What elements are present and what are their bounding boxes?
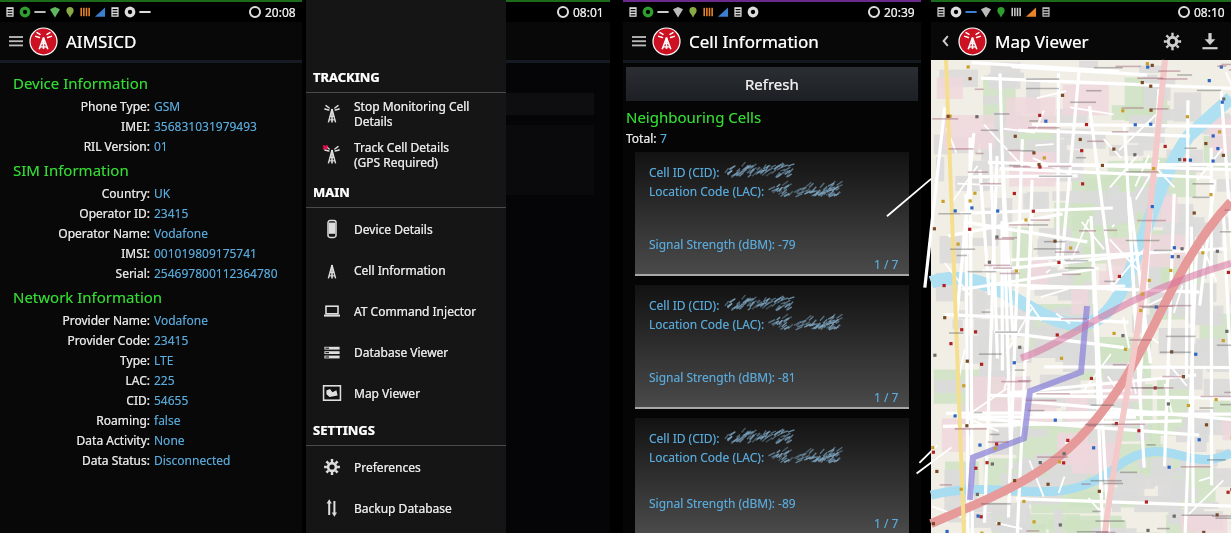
staticText: CID: <box>126 392 150 408</box>
button[interactable]: Cell ID (CID): <box>635 152 909 274</box>
staticText: Signal Strength (dBM): -79 <box>649 236 796 252</box>
button[interactable]: Settings <box>1159 28 1185 54</box>
button[interactable] <box>931 60 1231 533</box>
staticText: Track Cell Details (GPS Required) <box>354 139 450 170</box>
staticText: Vodafone <box>154 225 208 241</box>
staticText: None <box>154 432 185 448</box>
button[interactable]: Track Cell Details (GPS Required) <box>306 134 506 175</box>
staticText: Location Code (LAC): <box>649 316 768 332</box>
staticText: false <box>154 412 181 428</box>
staticText: Country: <box>101 185 150 201</box>
staticText: Preferences <box>354 459 421 475</box>
staticText: Location Code (LAC): <box>649 449 768 465</box>
button[interactable]: Database Viewer <box>306 331 506 372</box>
button[interactable]: Open navigation drawer <box>631 33 647 49</box>
staticText: AT Command Injector <box>354 303 477 319</box>
staticText: Operator Name: <box>58 225 150 241</box>
staticText: 08:01 <box>573 4 604 20</box>
button[interactable]: AT Command Injector <box>306 290 506 331</box>
staticText: 1 / 7 <box>874 515 899 531</box>
button[interactable]: Cell Information <box>306 249 506 290</box>
staticText: TRACKING <box>313 68 380 86</box>
staticText: Location Code (LAC): <box>649 183 768 199</box>
button[interactable]: Cell ID (CID): <box>635 418 909 533</box>
staticText: Device Information <box>13 73 149 93</box>
staticText: SIM Information <box>13 160 129 180</box>
staticText: Type: <box>120 352 150 368</box>
staticText: Phone Type: <box>80 98 150 114</box>
staticText: Cell Information <box>689 30 819 53</box>
staticText: Vodafone <box>154 312 208 328</box>
staticText: Total: <box>626 130 660 146</box>
staticText: LTE <box>154 352 174 368</box>
staticText: MAIN <box>313 183 350 201</box>
staticText: IMEI: <box>121 118 150 134</box>
staticText: Cell ID (CID): <box>649 297 723 313</box>
button[interactable]: Device Details <box>306 208 506 249</box>
staticText: SETTINGS <box>313 421 375 439</box>
staticText: Neighbouring Cells <box>626 107 762 127</box>
button[interactable]: Stop Monitoring Cell Details <box>306 93 506 134</box>
button[interactable]: Download map <box>1197 28 1223 54</box>
staticText: Roaming: <box>96 412 150 428</box>
staticText: Provider Name: <box>62 312 150 328</box>
staticText: Stop Monitoring Cell Details <box>354 98 470 129</box>
staticText: Map Viewer <box>354 385 421 401</box>
staticText: UK <box>154 185 171 201</box>
staticText: 225 <box>154 372 175 388</box>
staticText: Network Information <box>13 287 163 307</box>
staticText: LAC: <box>125 372 150 388</box>
staticText: 20:08 <box>265 4 296 20</box>
button[interactable]: Map Viewer <box>306 372 506 413</box>
button[interactable]: Preferences <box>306 446 506 487</box>
staticText: Serial: <box>115 265 150 281</box>
staticText: 7 <box>660 130 667 146</box>
staticText: Cell ID (CID): <box>649 430 723 446</box>
staticText: 254697800112364780 <box>154 265 278 281</box>
staticText: 23415 <box>154 332 189 348</box>
staticText: 20:39 <box>884 4 915 20</box>
staticText: 1 / 7 <box>874 389 899 405</box>
staticText: Backup Database <box>354 500 452 516</box>
button[interactable]: Backup Database <box>306 487 506 528</box>
staticText: Refresh <box>745 74 799 94</box>
staticText: 54655 <box>154 392 189 408</box>
button[interactable]: Open navigation drawer <box>8 33 24 49</box>
staticText: Data Activity: <box>76 432 150 448</box>
staticText: Data Status: <box>81 452 150 468</box>
staticText: AIMSICD <box>66 30 137 53</box>
button[interactable]: Back <box>939 34 953 48</box>
staticText: 01 <box>154 138 168 154</box>
staticText: RIL Version: <box>83 138 150 154</box>
staticText: GSM <box>154 98 181 114</box>
staticText: 1 / 7 <box>874 256 899 272</box>
staticText: IMSI: <box>121 245 150 261</box>
button[interactable]: Cell ID (CID): <box>635 285 909 407</box>
staticText: Disconnected <box>154 452 231 468</box>
staticText: Map Viewer <box>995 30 1089 53</box>
staticText: 23415 <box>154 205 189 221</box>
staticText: 08:10 <box>1194 4 1225 20</box>
staticText: Device Details <box>354 221 433 237</box>
staticText: Cell ID (CID): <box>649 164 723 180</box>
button[interactable]: Refresh <box>626 67 918 101</box>
staticText: Operator ID: <box>79 205 150 221</box>
staticText: 356831031979493 <box>154 118 257 134</box>
staticText: Signal Strength (dBM): -81 <box>649 369 796 385</box>
staticText: 001019809175741 <box>154 245 257 261</box>
staticText: Database Viewer <box>354 344 449 360</box>
staticText: Signal Strength (dBM): -89 <box>649 495 796 511</box>
staticText: Cell Information <box>354 262 446 278</box>
staticText: Provider Code: <box>67 332 150 348</box>
